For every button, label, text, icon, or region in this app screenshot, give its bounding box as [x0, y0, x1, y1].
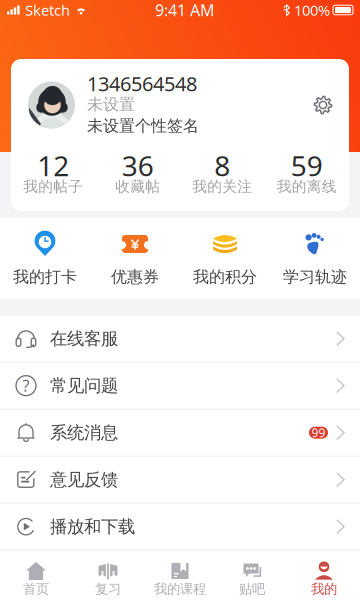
staticText: 我的打卡: [13, 267, 77, 287]
button[interactable]: 学习轨迹: [270, 230, 360, 287]
staticText: 8: [214, 147, 230, 184]
staticText: 我的关注: [192, 177, 252, 195]
staticText: 首页: [23, 581, 49, 597]
staticText: 意见反馈: [50, 469, 118, 490]
staticText: 收藏帖: [115, 177, 160, 195]
staticText: 未设置: [87, 95, 135, 114]
button[interactable]: 系统消息: [0, 410, 360, 457]
button[interactable]: 我的打卡: [0, 230, 90, 287]
staticText: 优惠券: [111, 267, 159, 287]
staticText: 我的课程: [154, 581, 206, 597]
staticText: 我的帖子: [23, 177, 83, 195]
button[interactable]: 复习: [72, 560, 144, 596]
button[interactable]: 59: [264, 153, 349, 195]
button[interactable]: 12: [11, 153, 95, 195]
staticText: 我的离线: [277, 177, 337, 195]
button[interactable]: 在线客服: [0, 316, 360, 363]
staticText: 9:41 AM: [155, 0, 215, 21]
button[interactable]: ?: [0, 363, 360, 410]
staticText: 59: [291, 147, 323, 184]
button[interactable]: 8: [180, 153, 264, 195]
staticText: 100%: [294, 0, 330, 20]
staticText: 在线客服: [50, 328, 118, 349]
staticText: 我的: [311, 581, 337, 597]
button[interactable]: 播放和下载: [0, 504, 360, 551]
button[interactable]: 首页: [0, 560, 72, 596]
staticText: ?: [22, 375, 29, 396]
staticText: 播放和下载: [50, 516, 135, 537]
button[interactable]: 我的: [288, 560, 360, 596]
staticText: 12: [37, 147, 69, 184]
button[interactable]: 我的积分: [180, 230, 270, 287]
button[interactable]: 设置: [314, 96, 332, 114]
button[interactable]: 36: [95, 153, 180, 195]
staticText: 系统消息: [50, 422, 118, 443]
staticText: 我的积分: [193, 267, 257, 287]
staticText: 36: [122, 147, 154, 184]
staticText: 复习: [95, 581, 121, 597]
staticText: 1346564548: [87, 70, 197, 97]
staticText: 学习轨迹: [283, 267, 347, 287]
button[interactable]: 意见反馈: [0, 457, 360, 504]
button[interactable]: 优惠券: [90, 230, 180, 287]
staticText: 常见问题: [50, 375, 118, 396]
staticText: Sketch: [25, 0, 70, 20]
button[interactable]: 我的课程: [144, 560, 216, 596]
button[interactable]: 贴吧: [216, 560, 288, 596]
staticText: 未设置个性签名: [87, 116, 199, 136]
staticText: 99: [311, 425, 325, 441]
staticText: 贴吧: [239, 581, 265, 597]
